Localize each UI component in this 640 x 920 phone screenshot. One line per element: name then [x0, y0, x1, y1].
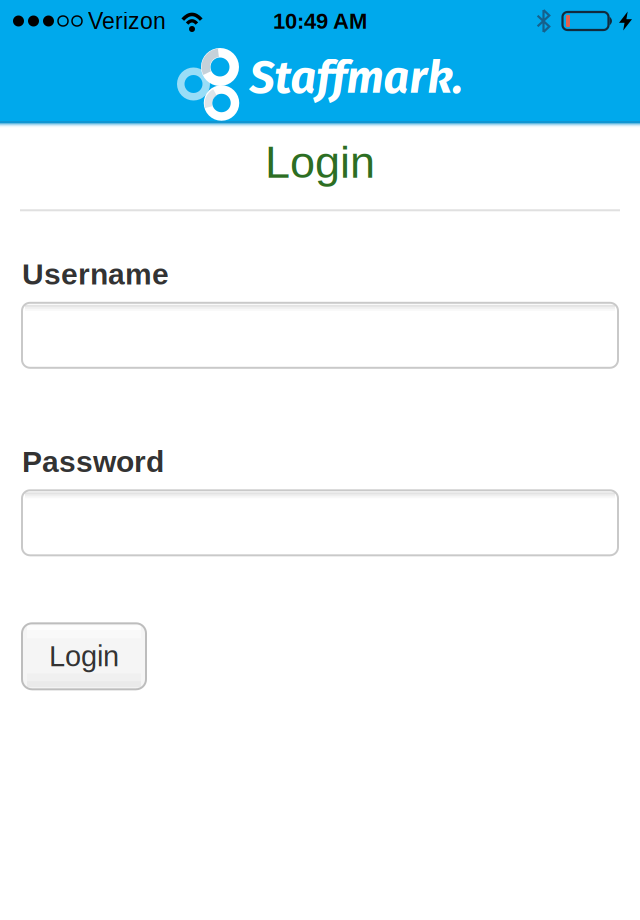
staticText: Verizon [88, 8, 166, 34]
button[interactable]: Username [22, 303, 618, 368]
staticText: 10:49 AM [273, 9, 367, 33]
staticText: Password [22, 445, 164, 478]
staticText: Staffmark. [249, 51, 463, 105]
staticText: Login [49, 640, 119, 672]
button[interactable]: Login [22, 623, 146, 689]
button[interactable]: Password [22, 490, 618, 555]
staticText: Username [22, 257, 169, 291]
staticText: Login [265, 137, 375, 187]
